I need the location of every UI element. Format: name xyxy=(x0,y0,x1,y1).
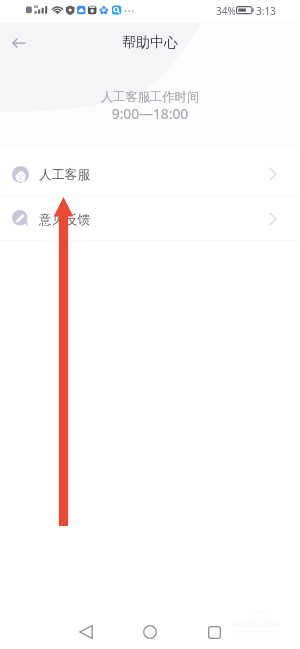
staticText: 34% xyxy=(216,4,236,18)
button[interactable]: Recents xyxy=(194,612,234,649)
staticText: 人工客服工作时间 xyxy=(0,89,300,104)
staticText: 帮助中心 xyxy=(0,34,300,52)
button[interactable]: 人工客服 xyxy=(0,152,300,196)
button[interactable]: 意见反馈 xyxy=(0,197,300,240)
button[interactable]: Back xyxy=(66,612,106,649)
staticText: 3:13 xyxy=(256,4,276,18)
staticText: 人工客服 xyxy=(39,167,91,183)
button[interactable]: Home xyxy=(130,612,170,649)
button[interactable]: Back xyxy=(0,26,34,60)
staticText: 意见反馈 xyxy=(39,212,91,228)
staticText: 9:00—18:00 xyxy=(0,104,300,123)
